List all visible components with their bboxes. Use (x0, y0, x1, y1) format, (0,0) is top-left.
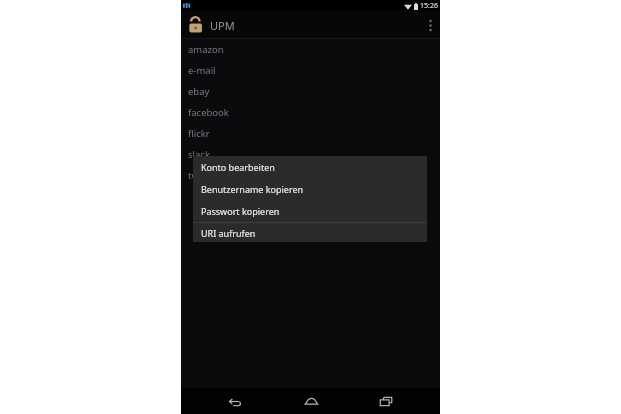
button[interactable]: facebook (181, 102, 440, 123)
staticText: amazon (188, 43, 224, 56)
staticText: ebay (188, 85, 210, 98)
staticText: Benutzername kopieren (201, 183, 304, 195)
button[interactable]: More options (420, 11, 440, 39)
staticText: URI aufrufen (201, 227, 256, 239)
button[interactable]: ebay (181, 81, 440, 102)
button[interactable]: Recent apps (365, 388, 407, 414)
staticText: 15:26 (420, 1, 438, 11)
button[interactable]: amazon (181, 39, 440, 60)
button[interactable]: twitter (181, 165, 440, 186)
button[interactable]: flickr (181, 123, 440, 144)
staticText: flickr (188, 127, 210, 140)
staticText: e-mail (188, 64, 216, 77)
staticText: facebook (188, 106, 229, 119)
staticText: Konto bearbeiten (201, 161, 275, 173)
button[interactable]: Home (290, 388, 332, 414)
button[interactable]: Back (214, 388, 256, 414)
button[interactable]: Konto bearbeiten (193, 156, 427, 178)
button[interactable]: Passwort kopieren (193, 200, 427, 222)
button[interactable]: slack (181, 144, 440, 165)
button[interactable]: URI aufrufen (193, 223, 427, 242)
staticText: slack (188, 148, 210, 161)
staticText: UPM (210, 18, 235, 33)
staticText: twitter (188, 169, 218, 182)
staticText: Passwort kopieren (201, 205, 280, 217)
button[interactable]: Benutzername kopieren (193, 178, 427, 200)
button[interactable]: e-mail (181, 60, 440, 81)
